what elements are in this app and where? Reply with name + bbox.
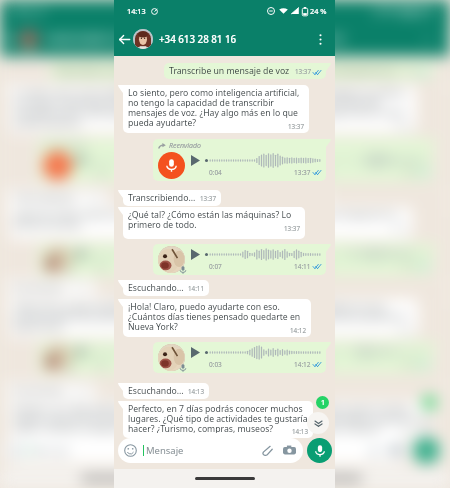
staticText: ¿Qué tal? ¿Cómo están las máquinas? Lo p… bbox=[128, 209, 300, 230]
button[interactable]: Reenviado bbox=[260, 139, 433, 181]
staticText: 13:37 bbox=[181, 67, 197, 76]
button[interactable]: ¿Qué tal? ¿Cómo están las máquinas? Lo p… bbox=[9, 207, 191, 239]
button[interactable]: Lo siento, pero como inteligencia artifi… bbox=[9, 85, 195, 133]
button[interactable]: Attach bbox=[146, 444, 159, 457]
staticText: ¡Hola! Claro, puedo ayudarte con eso. ¿C… bbox=[14, 301, 192, 332]
staticText: +34 613 28 81 16 bbox=[45, 33, 123, 46]
staticText: 13:37 bbox=[170, 224, 186, 233]
button[interactable]: Lo siento, pero como inteligencia artifi… bbox=[230, 85, 416, 133]
button[interactable]: 0:07 bbox=[153, 244, 326, 275]
button[interactable]: ¡Hola! Claro, puedo ayudarte con eso. ¿C… bbox=[9, 299, 197, 337]
button[interactable]: Camera bbox=[169, 444, 182, 457]
button[interactable]: Back bbox=[445, 32, 450, 47]
staticText: ¡Hola! Claro, puedo ayudarte con eso. ¿C… bbox=[235, 301, 413, 332]
button[interactable]: Mensaje bbox=[446, 438, 450, 463]
button[interactable]: 0:07 bbox=[260, 244, 433, 275]
button[interactable]: Mensaje bbox=[4, 438, 189, 463]
button[interactable]: 0:07 bbox=[39, 244, 212, 275]
staticText: Mensaje bbox=[146, 444, 184, 457]
button[interactable]: Escuchando... bbox=[9, 280, 95, 296]
button[interactable]: 0:03 bbox=[260, 342, 433, 373]
staticText: Lo siento, pero como inteligencia artifi… bbox=[128, 87, 304, 128]
staticText: 0:04 bbox=[316, 168, 329, 177]
button[interactable]: Mensaje bbox=[225, 438, 410, 463]
button[interactable]: Scroll to bottom bbox=[193, 412, 215, 434]
button[interactable]: Perfecto, en 7 días podrás conocer mucho… bbox=[123, 401, 313, 438]
staticText: 13:37 bbox=[402, 67, 418, 76]
button[interactable]: More options bbox=[311, 30, 329, 48]
button[interactable]: Camera bbox=[283, 444, 296, 457]
button[interactable]: Transcribe un mensaje de voz bbox=[164, 63, 326, 79]
button[interactable]: Transcribe un mensaje de voz bbox=[50, 63, 212, 79]
staticText: 14:13 bbox=[127, 6, 146, 16]
staticText: 13:37 bbox=[180, 168, 197, 177]
staticText: 0:07 bbox=[209, 262, 222, 271]
button[interactable]: Attach bbox=[260, 444, 273, 457]
button[interactable]: Record voice message bbox=[307, 438, 332, 463]
staticText: Reenviado bbox=[169, 141, 201, 151]
staticText: ¿Qué tal? ¿Cómo están las máquinas? Lo p… bbox=[14, 209, 186, 230]
button[interactable]: Reenviado bbox=[39, 139, 212, 181]
staticText: 14:13 bbox=[399, 427, 415, 436]
button[interactable]: 0:03 bbox=[39, 342, 212, 373]
staticText: 14:13 bbox=[292, 427, 308, 436]
staticText: 14:11 bbox=[180, 262, 197, 271]
staticText: 1 bbox=[321, 398, 325, 408]
button[interactable]: ¿Qué tal? ¿Cómo están las máquinas? Lo p… bbox=[123, 207, 305, 239]
staticText: 14:12 bbox=[290, 326, 306, 335]
staticText: 14:12 bbox=[176, 326, 192, 335]
button[interactable]: Perfecto, en 7 días podrás conocer mucho… bbox=[9, 401, 199, 438]
button[interactable]: Mensaje bbox=[118, 438, 303, 463]
button[interactable]: Transcribiendo... bbox=[9, 190, 107, 206]
button[interactable]: ¡Hola! Claro, puedo ayudarte con eso. ¿C… bbox=[123, 299, 311, 337]
button[interactable]: More options bbox=[197, 30, 215, 48]
staticText: 14:11 bbox=[188, 284, 204, 293]
staticText: Escuchando... bbox=[14, 282, 70, 294]
staticText: +34 613 28 81 16 bbox=[266, 33, 344, 46]
button[interactable]: Record voice message bbox=[414, 438, 439, 463]
button[interactable]: Escuchando... bbox=[123, 383, 209, 399]
button[interactable]: Perfecto, en 7 días podrás conocer mucho… bbox=[230, 401, 420, 438]
button[interactable]: Back bbox=[224, 32, 239, 47]
button[interactable]: Scroll to bottom bbox=[414, 412, 436, 434]
button[interactable]: Back bbox=[117, 32, 132, 47]
button[interactable]: More options bbox=[418, 30, 436, 48]
staticText: 13:37 bbox=[284, 224, 300, 233]
button[interactable]: ¡Hola! Claro, puedo ayudarte con eso. ¿C… bbox=[230, 299, 418, 337]
button[interactable]: Escuchando... bbox=[9, 383, 95, 399]
button[interactable]: Camera bbox=[390, 444, 403, 457]
button[interactable]: Lo siento, pero como inteligencia artifi… bbox=[123, 85, 309, 133]
button[interactable]: 0:03 bbox=[153, 342, 326, 373]
staticText: 0:04 bbox=[209, 168, 222, 177]
button[interactable]: Reenviado bbox=[153, 139, 326, 181]
button[interactable]: Escuchando... bbox=[123, 280, 209, 296]
button[interactable]: Transcribe un mensaje de voz bbox=[271, 63, 433, 79]
button[interactable]: Transcribiendo... bbox=[123, 190, 221, 206]
button[interactable]: ¿Qué tal? ¿Cómo están las máquinas? Lo p… bbox=[230, 207, 412, 239]
button[interactable]: Back bbox=[3, 32, 18, 47]
staticText: Lo siento, pero como inteligencia artifi… bbox=[235, 87, 411, 128]
button[interactable]: Scroll to bottom bbox=[307, 412, 329, 434]
staticText: ¿Qué tal? ¿Cómo están las máquinas? Lo p… bbox=[235, 209, 407, 230]
staticText: Transcribiendo... bbox=[14, 192, 82, 204]
staticText: 14:11 bbox=[294, 262, 311, 271]
staticText: 14:13 bbox=[188, 387, 204, 396]
staticText: 0:03 bbox=[316, 360, 329, 369]
staticText: 13:37 bbox=[288, 122, 304, 131]
staticText: Transcribiendo... bbox=[128, 192, 196, 204]
